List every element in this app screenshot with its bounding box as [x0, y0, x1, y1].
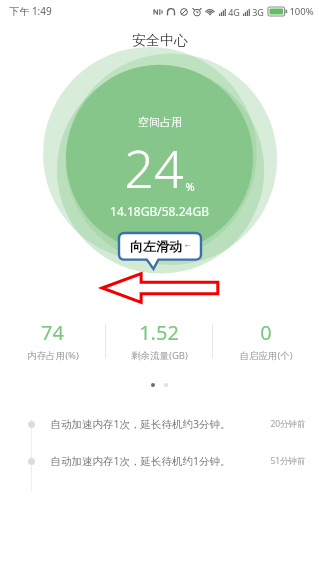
- staticText: 0: [260, 319, 272, 346]
- staticText: 自动加速内存1次，延长待机约1分钟。: [50, 454, 231, 468]
- staticText: 3G: [252, 6, 264, 18]
- staticText: 74: [41, 319, 64, 346]
- button[interactable]: 向左滑动提示: [119, 233, 201, 269]
- staticText: %: [185, 179, 195, 194]
- staticText: 自动加速内存1次，延长待机约3分钟。: [50, 417, 231, 431]
- staticText: 内存占用(%): [27, 349, 79, 362]
- button[interactable]: 自动加速内存1次，延长待机约3分钟。: [0, 417, 319, 431]
- staticText: 24: [124, 132, 184, 203]
- staticText: 空间占用: [138, 115, 182, 129]
- staticText: 下午 1:49: [9, 4, 52, 18]
- staticText: 100%: [289, 5, 314, 18]
- staticText: 14.18GB/58.24GB: [110, 203, 209, 219]
- staticText: 自启应用(个): [239, 349, 293, 362]
- button[interactable]: 74: [0, 315, 105, 367]
- staticText: 剩余流量(GB): [131, 349, 188, 362]
- staticText: 4G: [228, 6, 240, 18]
- button[interactable]: 1.52: [106, 315, 212, 367]
- staticText: 20分钟前: [270, 418, 306, 430]
- staticText: ←: [185, 242, 191, 250]
- staticText: 向左滑动: [130, 238, 182, 254]
- staticText: 51分钟前: [270, 455, 306, 467]
- staticText: 安全中心: [132, 32, 188, 50]
- button[interactable]: 0: [213, 315, 319, 367]
- other: 向左箭头: [101, 272, 219, 304]
- staticText: 1.52: [139, 319, 179, 346]
- button[interactable]: 自动加速内存1次，延长待机约1分钟。: [0, 454, 319, 468]
